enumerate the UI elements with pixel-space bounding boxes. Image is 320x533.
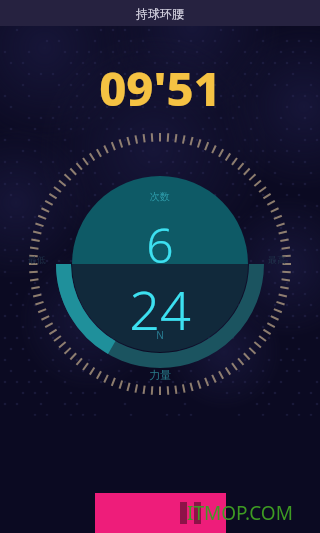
button[interactable]: 持球环腰: [0, 0, 320, 26]
staticText: 最低: [28, 254, 46, 265]
staticText: ITMOP.COM: [187, 500, 293, 526]
staticText: 6: [146, 212, 174, 277]
staticText: 持球环腰: [136, 6, 184, 21]
staticText: 最高: [268, 254, 286, 265]
staticText: 力量: [149, 368, 171, 382]
staticText: N: [156, 328, 164, 342]
staticText: 24: [129, 272, 191, 346]
staticText: 次数: [150, 190, 170, 203]
staticText: 09'51: [99, 56, 221, 120]
button[interactable]: Pause: [95, 493, 226, 533]
